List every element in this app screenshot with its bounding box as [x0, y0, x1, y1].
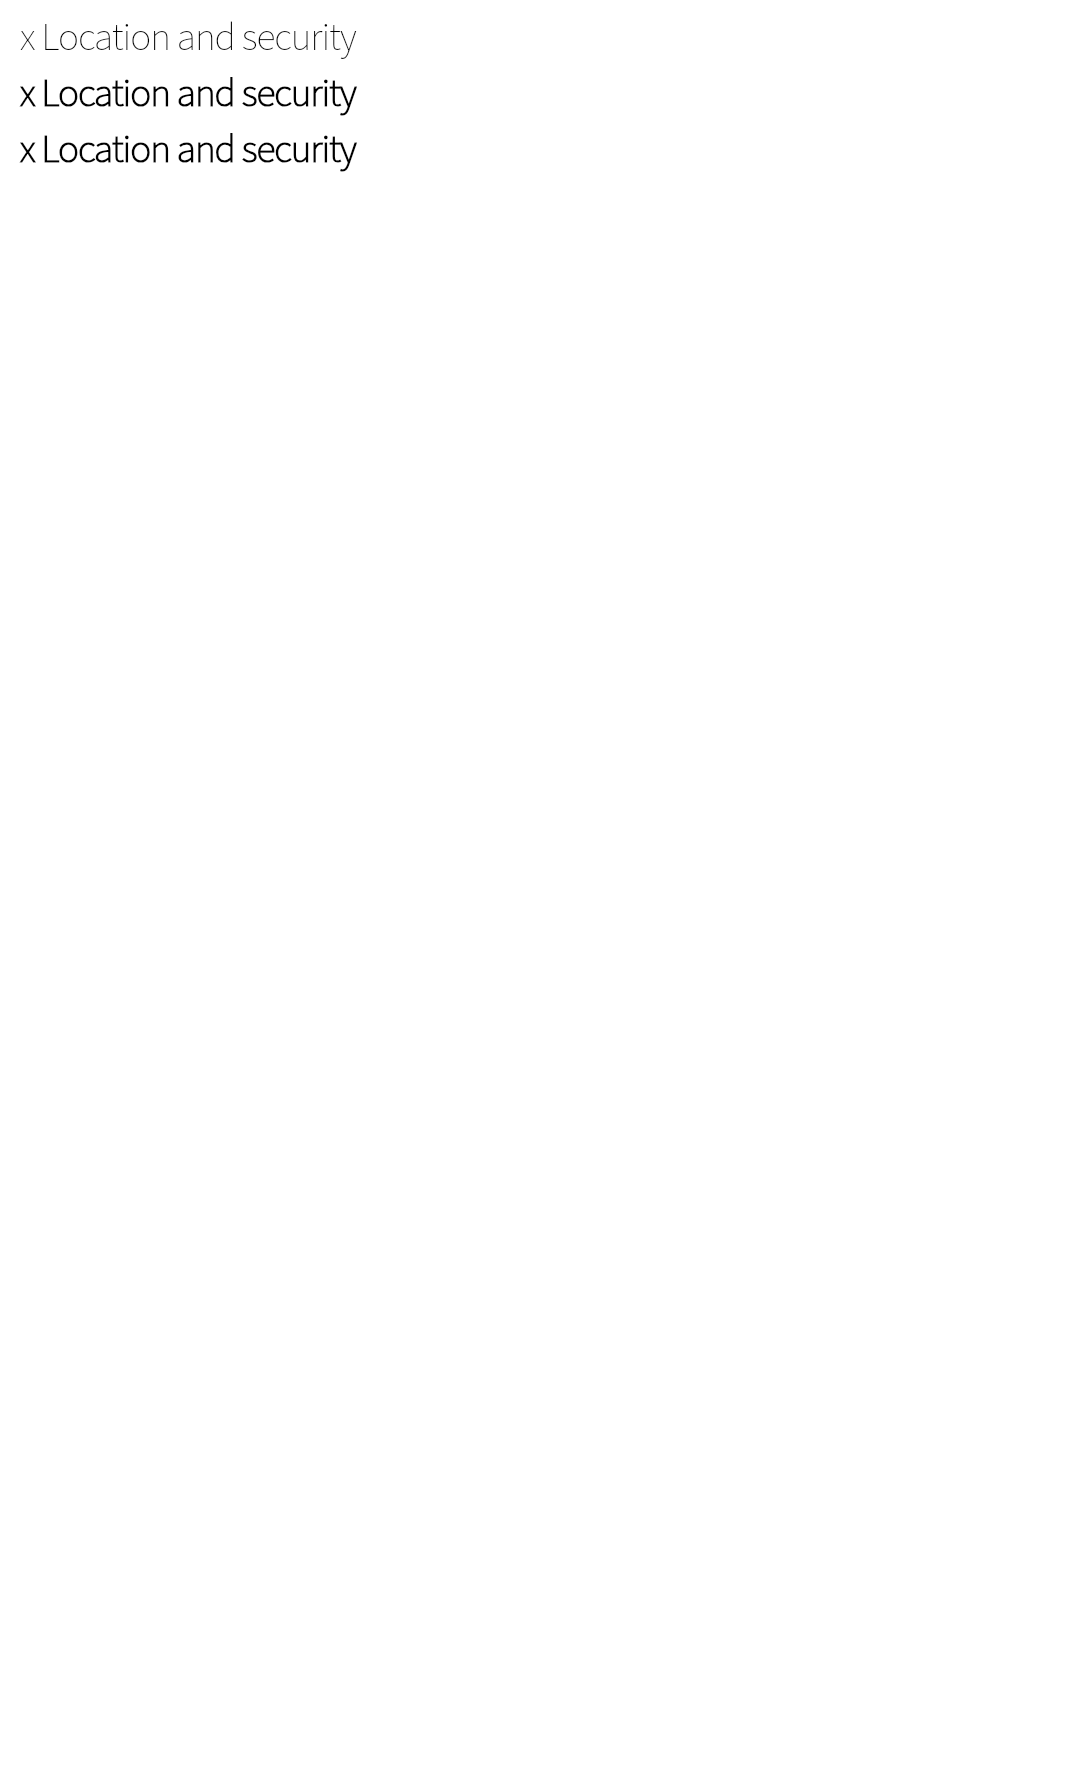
staticText: x Location and security	[20, 122, 356, 178]
staticText: x Location and security	[20, 10, 356, 66]
staticText: x Location and security	[20, 66, 356, 122]
